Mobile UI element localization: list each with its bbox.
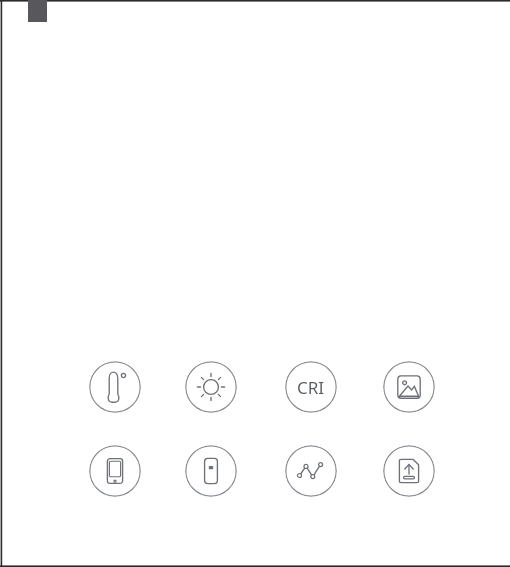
button[interactable]: Image — [383, 361, 435, 413]
button[interactable]: CRI — [285, 361, 337, 413]
button[interactable]: Phone — [89, 445, 141, 497]
button[interactable]: Device — [185, 445, 237, 497]
button[interactable]: Chart — [285, 445, 337, 497]
button[interactable]: Upload — [383, 445, 435, 497]
button[interactable]: Brightness — [185, 361, 237, 413]
button[interactable]: Temperature — [89, 361, 141, 413]
staticText: CRI — [297, 376, 325, 399]
